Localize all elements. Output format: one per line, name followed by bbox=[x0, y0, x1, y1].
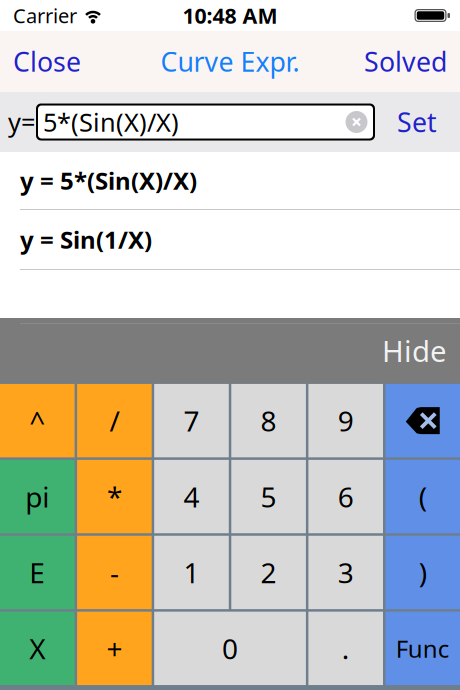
staticText: y = 5*(Sin(X)/X) bbox=[20, 165, 197, 196]
staticText: y = Sin(1/X) bbox=[20, 224, 152, 255]
staticText: . bbox=[342, 630, 350, 667]
staticText: ^ bbox=[29, 402, 45, 439]
staticText: 1 bbox=[183, 554, 199, 591]
button[interactable]: 5*(Sin(X)/X) bbox=[36, 103, 375, 140]
staticText: E bbox=[29, 554, 45, 591]
staticText: Carrier bbox=[13, 2, 77, 29]
button[interactable]: Close bbox=[13, 44, 81, 79]
staticText: Close bbox=[13, 44, 81, 79]
staticText: Func bbox=[396, 632, 450, 664]
staticText: 2 bbox=[261, 554, 277, 591]
staticText: + bbox=[106, 630, 122, 667]
button[interactable]: Set bbox=[397, 104, 437, 140]
button[interactable]: y = 5*(Sin(X)/X) bbox=[0, 152, 460, 209]
button[interactable]: Solved bbox=[364, 44, 447, 79]
button[interactable]: 2 bbox=[231, 536, 306, 609]
staticText: 5 bbox=[261, 478, 277, 515]
staticText: Set bbox=[397, 104, 437, 140]
button[interactable] bbox=[346, 111, 367, 132]
button[interactable] bbox=[385, 384, 460, 457]
button[interactable]: 5 bbox=[231, 460, 306, 533]
staticText: / bbox=[109, 402, 119, 439]
staticText: y= bbox=[8, 105, 35, 139]
button[interactable]: pi bbox=[0, 460, 75, 533]
staticText: 9 bbox=[338, 402, 354, 439]
staticText: 4 bbox=[183, 478, 199, 515]
button[interactable]: y = Sin(1/X) bbox=[0, 210, 460, 269]
button[interactable]: 3 bbox=[308, 536, 383, 609]
button[interactable]: 6 bbox=[308, 460, 383, 533]
staticText: 0 bbox=[222, 630, 238, 667]
button[interactable]: ( bbox=[385, 460, 460, 533]
button[interactable]: * bbox=[77, 460, 152, 533]
button[interactable]: . bbox=[308, 612, 383, 685]
staticText: Hide bbox=[382, 331, 447, 370]
button[interactable]: - bbox=[77, 536, 152, 609]
button[interactable]: ^ bbox=[0, 384, 75, 457]
button[interactable]: E bbox=[0, 536, 75, 609]
staticText: 8 bbox=[261, 402, 277, 439]
staticText: 6 bbox=[338, 478, 354, 515]
button[interactable]: 1 bbox=[154, 536, 229, 609]
button[interactable]: 8 bbox=[231, 384, 306, 457]
button[interactable]: ) bbox=[385, 536, 460, 609]
button[interactable]: Func bbox=[385, 612, 460, 685]
button[interactable]: / bbox=[77, 384, 152, 457]
staticText: 5*(Sin(X)/X) bbox=[43, 105, 179, 139]
button[interactable]: Hide bbox=[382, 331, 447, 370]
staticText: - bbox=[110, 554, 119, 591]
staticText: * bbox=[107, 478, 122, 515]
button[interactable]: 4 bbox=[154, 460, 229, 533]
staticText: Solved bbox=[364, 44, 447, 79]
staticText: Curve Expr. bbox=[160, 44, 299, 79]
button[interactable]: 9 bbox=[308, 384, 383, 457]
button[interactable]: + bbox=[77, 612, 152, 685]
staticText: 10:48 AM bbox=[182, 1, 277, 30]
staticText: ( bbox=[419, 478, 427, 515]
staticText: 7 bbox=[183, 402, 199, 439]
button[interactable]: 7 bbox=[154, 384, 229, 457]
staticText: ) bbox=[419, 554, 427, 591]
button[interactable]: X bbox=[0, 612, 75, 685]
button[interactable]: 0 bbox=[154, 612, 306, 685]
staticText: 3 bbox=[338, 554, 354, 591]
staticText: X bbox=[29, 630, 45, 667]
staticText: pi bbox=[25, 478, 49, 515]
